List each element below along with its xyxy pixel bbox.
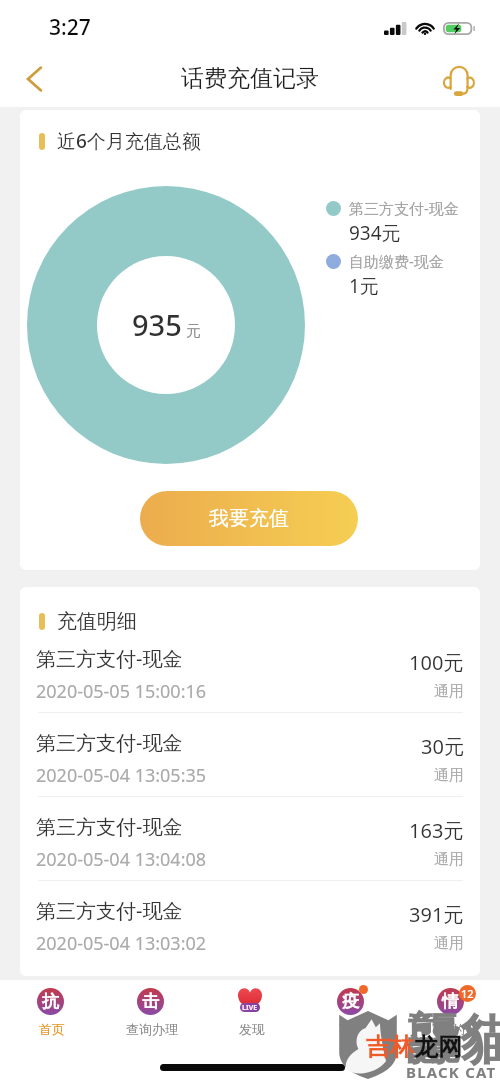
staticText: 第三方支付-现金	[36, 729, 183, 756]
staticText: 元	[186, 322, 201, 341]
staticText: 第三方支付-现金	[36, 813, 183, 840]
button[interactable]: 击	[100, 980, 200, 1040]
staticText: 查询办理	[126, 1021, 178, 1037]
staticText: 疫	[342, 991, 359, 1012]
staticText: 近6个月充值总额	[57, 128, 201, 154]
staticText: 吉林	[366, 1032, 414, 1062]
button[interactable]: 情	[400, 980, 500, 1040]
button[interactable]: 疫	[300, 980, 400, 1040]
staticText: 自助缴费-现金	[349, 251, 444, 271]
staticText: 充值明细	[57, 609, 137, 634]
button[interactable]: 第三方支付-现金	[20, 713, 480, 796]
staticText: 龘貓	[406, 1006, 500, 1074]
staticText: 第三方支付-现金	[36, 897, 183, 924]
staticText: 通用	[434, 766, 464, 785]
button[interactable]: Back	[8, 54, 60, 104]
staticText: 934元	[349, 220, 401, 246]
staticText: 2020-05-04 13:03:02	[36, 931, 207, 956]
staticText: LIVE	[242, 1003, 258, 1012]
staticText: 通用	[434, 682, 464, 701]
staticText: 首页	[39, 1021, 65, 1037]
button[interactable]: 抗	[0, 980, 100, 1040]
staticText: 12	[461, 986, 474, 1001]
staticText: 话费充值记录	[181, 64, 319, 93]
staticText: 163元	[409, 817, 464, 844]
staticText: 2020-05-05 15:00:16	[36, 679, 207, 704]
button[interactable]: 第三方支付-现金	[20, 881, 480, 964]
staticText: 391元	[409, 901, 464, 928]
staticText: 我要充值	[209, 506, 289, 531]
staticText: 我的	[439, 1021, 465, 1037]
button[interactable]: LIVE	[200, 980, 300, 1040]
staticText: 通用	[434, 850, 464, 869]
staticText: 龙网	[414, 1032, 462, 1062]
staticText: 抗	[42, 991, 59, 1012]
staticText: 1元	[349, 273, 379, 299]
staticText: 击	[142, 991, 159, 1012]
staticText: 发现	[239, 1021, 265, 1037]
staticText: 商城	[339, 1021, 365, 1037]
staticText: 30元	[421, 733, 464, 760]
button[interactable]: 第三方支付-现金	[20, 629, 480, 712]
button[interactable]: 第三方支付-现金	[20, 797, 480, 880]
staticText: 情	[442, 991, 459, 1012]
button[interactable]: 我要充值	[140, 491, 358, 546]
staticText: 第三方支付-现金	[349, 198, 459, 218]
staticText: 2020-05-04 13:04:08	[36, 847, 207, 872]
staticText: 2020-05-04 13:05:35	[36, 763, 207, 788]
staticText: 100元	[409, 649, 464, 676]
staticText: 第三方支付-现金	[36, 645, 183, 672]
staticText: 935	[132, 305, 182, 344]
staticText: 3:27	[49, 13, 91, 42]
staticText: BLACK CAT	[406, 1062, 497, 1082]
button[interactable]: Customer service	[436, 55, 488, 105]
staticText: 通用	[434, 934, 464, 953]
